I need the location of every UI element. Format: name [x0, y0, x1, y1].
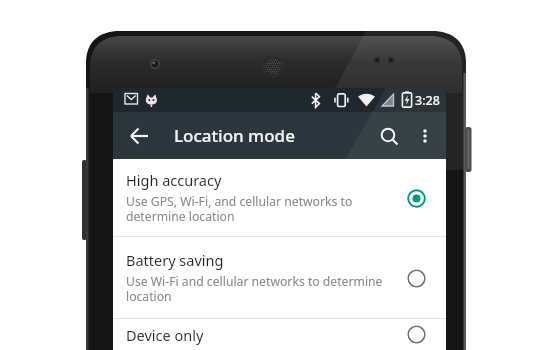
button[interactable]: More options: [408, 119, 442, 153]
staticText: Use GPS, Wi-Fi, and cellular networks to…: [126, 193, 353, 225]
button[interactable]: Device only: [396, 319, 436, 350]
button[interactable]: High accuracy selected: [396, 178, 436, 218]
button[interactable]: Battery saving: [396, 258, 436, 298]
staticText: Battery saving: [126, 250, 224, 270]
button[interactable]: Back: [121, 118, 157, 154]
staticText: Device only: [126, 325, 204, 345]
button[interactable]: High accuracy: [113, 159, 446, 236]
button[interactable]: Battery saving: [113, 237, 446, 318]
staticText: Use Wi-Fi and cellular networks to deter…: [126, 273, 383, 305]
staticText: Location mode: [174, 124, 295, 147]
staticText: 3:28: [415, 92, 440, 109]
button[interactable]: Search: [370, 117, 408, 155]
staticText: High accuracy: [126, 170, 222, 190]
button[interactable]: Device only: [113, 319, 446, 350]
